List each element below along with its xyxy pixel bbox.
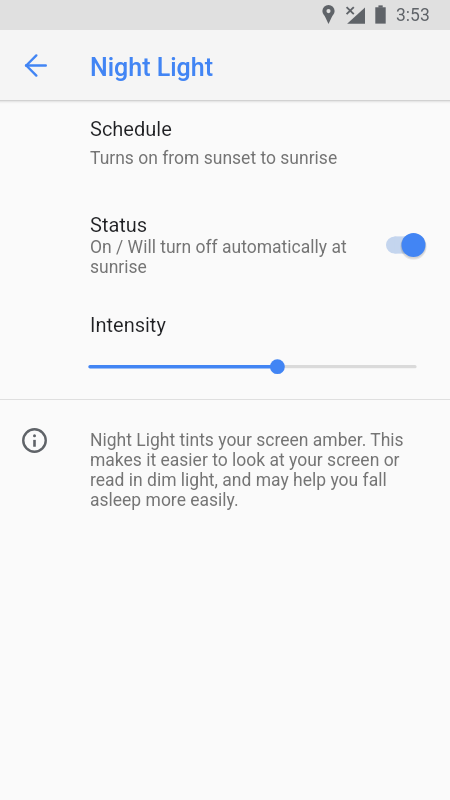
- staticText: Night Light: [90, 53, 213, 82]
- button[interactable]: Status: [0, 203, 450, 289]
- staticText: Intensity: [90, 313, 166, 336]
- button[interactable]: Night Light on: [358, 228, 420, 262]
- staticText: Night Light tints your screen amber. Thi…: [90, 430, 408, 510]
- staticText: Schedule: [90, 117, 172, 140]
- staticText: Status: [90, 213, 148, 236]
- staticText: Turns on from sunset to sunrise: [90, 148, 338, 169]
- other: Information: [22, 428, 47, 453]
- button[interactable]: Intensity: [0, 300, 450, 392]
- button[interactable]: Schedule: [0, 105, 450, 183]
- staticText: 3:53: [396, 5, 430, 26]
- button[interactable]: Navigate up: [18, 48, 52, 82]
- staticText: On / Will turn off automatically at sunr…: [90, 237, 358, 277]
